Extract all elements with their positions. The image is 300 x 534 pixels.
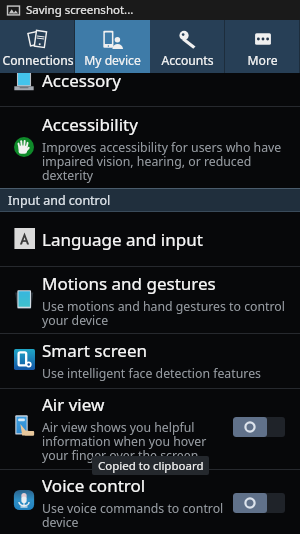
staticText: Accessibility: [42, 113, 138, 136]
button[interactable]: [0, 212, 300, 266]
staticText: Language and input: [42, 228, 203, 251]
staticText: Use intelligent face detection features: [42, 365, 261, 382]
staticText: Smart screen: [42, 339, 148, 362]
button[interactable]: My device: [75, 20, 150, 73]
button[interactable]: Voice control switch: [228, 487, 290, 519]
staticText: Accessory: [42, 69, 122, 92]
staticText: My device: [84, 52, 141, 69]
button[interactable]: [0, 389, 300, 469]
button[interactable]: Air view switch: [228, 411, 290, 443]
button[interactable]: Copied to clipboard: [92, 456, 209, 475]
staticText: Use motions and hand gestures to control…: [42, 298, 292, 328]
button[interactable]: Accounts: [150, 20, 225, 73]
button[interactable]: [0, 470, 300, 534]
staticText: More: [247, 52, 278, 69]
button[interactable]: [0, 334, 300, 388]
button[interactable]: [0, 107, 300, 188]
button[interactable]: Connections: [0, 20, 75, 73]
staticText: Voice control: [42, 474, 146, 497]
staticText: Input and control: [8, 192, 111, 209]
staticText: Improves accessibility for users who hav…: [42, 139, 292, 183]
staticText: Air view shows you helpful information w…: [42, 419, 232, 463]
staticText: Copied to clipboard: [98, 458, 204, 474]
button[interactable]: More: [225, 20, 300, 73]
staticText: Use voice commands to control device: [42, 500, 232, 530]
staticText: Air view: [42, 393, 105, 416]
staticText: Accounts: [161, 52, 214, 69]
staticText: Motions and gestures: [42, 272, 216, 295]
button[interactable]: [0, 72, 300, 107]
staticText: Connections: [2, 52, 74, 69]
staticText: Saving screenshot...: [26, 2, 134, 18]
button[interactable]: [0, 267, 300, 333]
